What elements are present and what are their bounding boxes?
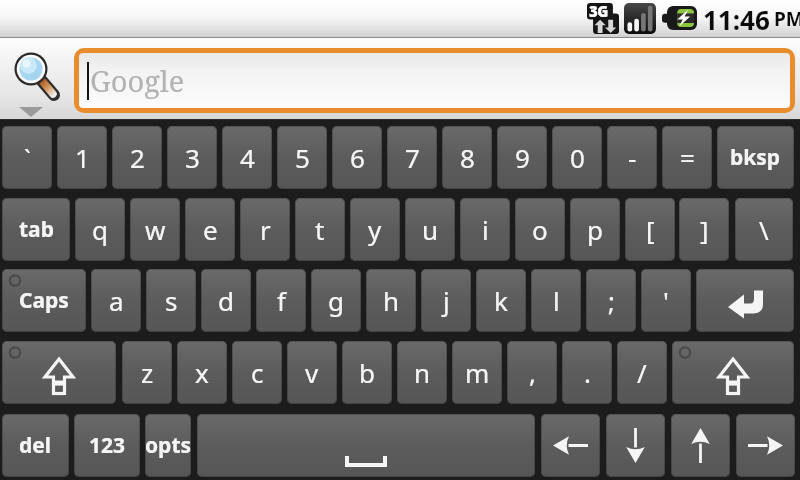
button[interactable]: c: [232, 341, 282, 404]
button[interactable]: `: [2, 126, 52, 189]
staticText: q: [92, 212, 108, 247]
button[interactable]: r: [240, 198, 290, 261]
button[interactable]: n: [397, 341, 447, 404]
button[interactable]: 6: [332, 126, 382, 189]
button[interactable]: h: [366, 269, 416, 332]
button[interactable]: Shift: [672, 341, 794, 404]
staticText: 3G: [589, 1, 608, 21]
staticText: bksp: [730, 143, 781, 172]
button[interactable]: Up: [671, 414, 730, 477]
staticText: p: [587, 212, 603, 247]
button[interactable]: w: [130, 198, 180, 261]
button[interactable]: 7: [387, 126, 437, 189]
staticText: n: [414, 355, 431, 390]
staticText: ': [663, 283, 669, 318]
button[interactable]: 1: [57, 126, 107, 189]
staticText: =: [680, 140, 695, 175]
staticText: b: [359, 355, 375, 390]
button[interactable]: .: [562, 341, 612, 404]
staticText: m: [465, 355, 490, 390]
button[interactable]: p: [570, 198, 620, 261]
button[interactable]: f: [256, 269, 306, 332]
staticText: 8: [460, 140, 475, 175]
button[interactable]: tab: [2, 198, 70, 261]
button[interactable]: y: [350, 198, 400, 261]
button[interactable]: ]: [679, 198, 729, 261]
button[interactable]: Down: [606, 414, 665, 477]
staticText: 11:46: [703, 2, 770, 37]
staticText: ]: [700, 212, 709, 247]
button[interactable]: 8: [442, 126, 492, 189]
button[interactable]: m: [452, 341, 502, 404]
staticText: Caps: [19, 286, 69, 315]
button[interactable]: d: [201, 269, 251, 332]
staticText: opts: [145, 431, 191, 460]
button[interactable]: \: [735, 198, 793, 261]
button[interactable]: 0: [552, 126, 602, 189]
button[interactable]: q: [75, 198, 125, 261]
staticText: 1: [75, 140, 90, 175]
button[interactable]: 9: [497, 126, 547, 189]
button[interactable]: Enter: [696, 269, 794, 332]
button[interactable]: ,: [507, 341, 557, 404]
staticText: l: [553, 283, 560, 318]
button[interactable]: Space: [197, 414, 535, 477]
button[interactable]: Search provider: [0, 38, 74, 120]
staticText: tab: [19, 215, 54, 244]
button[interactable]: Google: [79, 53, 790, 108]
staticText: Google: [90, 61, 185, 100]
staticText: -: [628, 140, 637, 175]
staticText: z: [141, 355, 154, 390]
button[interactable]: j: [421, 269, 471, 332]
button[interactable]: o: [515, 198, 565, 261]
button[interactable]: [: [625, 198, 675, 261]
button[interactable]: =: [662, 126, 712, 189]
staticText: s: [165, 283, 178, 318]
button[interactable]: 4: [222, 126, 272, 189]
staticText: [: [646, 212, 655, 247]
staticText: 5: [295, 140, 310, 175]
staticText: 2: [130, 140, 145, 175]
button[interactable]: a: [91, 269, 141, 332]
button[interactable]: /: [617, 341, 667, 404]
staticText: /: [637, 355, 647, 390]
button[interactable]: -: [607, 126, 657, 189]
button[interactable]: 3: [167, 126, 217, 189]
button[interactable]: 123: [74, 414, 140, 477]
button[interactable]: s: [146, 269, 196, 332]
staticText: v: [305, 355, 319, 390]
button[interactable]: bksp: [717, 126, 794, 189]
staticText: f: [277, 283, 286, 318]
staticText: ,: [529, 355, 536, 390]
button[interactable]: z: [122, 341, 172, 404]
button[interactable]: e: [185, 198, 235, 261]
button[interactable]: 5: [277, 126, 327, 189]
button[interactable]: Right: [736, 414, 795, 477]
button[interactable]: b: [342, 341, 392, 404]
button[interactable]: i: [460, 198, 510, 261]
button[interactable]: Shift: [2, 341, 116, 404]
button[interactable]: l: [531, 269, 581, 332]
staticText: h: [383, 283, 400, 318]
staticText: \: [759, 212, 769, 247]
button[interactable]: x: [177, 341, 227, 404]
staticText: j: [443, 283, 450, 318]
staticText: k: [494, 283, 508, 318]
button[interactable]: ': [641, 269, 691, 332]
button[interactable]: del: [2, 414, 69, 477]
staticText: c: [251, 355, 264, 390]
staticText: a: [109, 283, 124, 318]
button[interactable]: k: [476, 269, 526, 332]
button[interactable]: opts: [145, 414, 191, 477]
button[interactable]: ;: [586, 269, 636, 332]
staticText: 123: [89, 431, 126, 460]
button[interactable]: Left: [541, 414, 600, 477]
button[interactable]: 2: [112, 126, 162, 189]
staticText: d: [218, 283, 234, 318]
button[interactable]: t: [295, 198, 345, 261]
button[interactable]: g: [311, 269, 361, 332]
button[interactable]: v: [287, 341, 337, 404]
button[interactable]: u: [405, 198, 455, 261]
button[interactable]: Caps: [2, 269, 86, 332]
staticText: `: [24, 141, 31, 174]
